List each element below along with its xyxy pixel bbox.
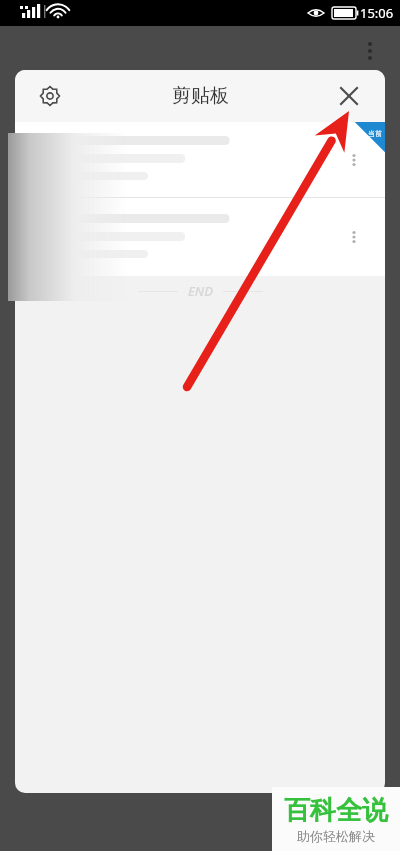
button[interactable]: Item menu: [15, 198, 385, 276]
button[interactable]: Settings: [32, 78, 68, 114]
staticText: 当前: [368, 129, 382, 138]
button[interactable]: Item menu: [341, 147, 367, 173]
button[interactable]: Item menu: [341, 224, 367, 250]
staticText: 15:06: [360, 4, 394, 22]
staticText: END: [188, 282, 213, 300]
staticText: 百科全说: [284, 794, 388, 827]
staticText: 剪贴板: [172, 84, 229, 108]
button[interactable]: Item menu: [15, 122, 385, 197]
staticText: 助你轻松解决: [297, 828, 375, 844]
button[interactable]: Close: [330, 77, 368, 115]
button[interactable]: More options: [355, 33, 385, 63]
